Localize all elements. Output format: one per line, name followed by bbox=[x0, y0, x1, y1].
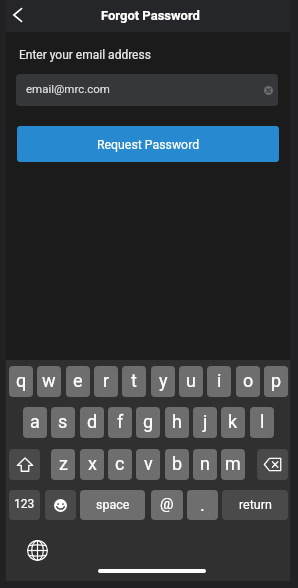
button[interactable]: u bbox=[179, 366, 203, 397]
button[interactable]: Emoji bbox=[45, 490, 76, 520]
staticText: p bbox=[271, 370, 282, 391]
button[interactable]: space bbox=[80, 490, 145, 520]
staticText: y bbox=[159, 370, 168, 391]
button[interactable]: Shift bbox=[9, 449, 40, 480]
button[interactable]: l bbox=[250, 407, 274, 438]
button[interactable]: y bbox=[151, 366, 175, 397]
staticText: Request Password bbox=[97, 138, 200, 152]
button[interactable]: v bbox=[136, 449, 160, 480]
button[interactable]: j bbox=[193, 407, 217, 438]
button[interactable]: a bbox=[23, 407, 47, 438]
staticText: i bbox=[217, 370, 222, 391]
button[interactable]: f bbox=[108, 407, 132, 438]
button[interactable]: k bbox=[221, 407, 245, 438]
staticText: s bbox=[58, 411, 68, 432]
staticText: r bbox=[103, 370, 110, 391]
button[interactable]: g bbox=[136, 407, 160, 438]
button[interactable]: r bbox=[94, 366, 118, 397]
staticText: space bbox=[96, 497, 130, 512]
button[interactable]: q bbox=[9, 366, 33, 397]
staticText: x bbox=[88, 453, 97, 474]
button[interactable]: w bbox=[37, 366, 61, 397]
staticText: @ bbox=[160, 495, 174, 513]
button[interactable]: c bbox=[108, 449, 132, 480]
button[interactable]: n bbox=[193, 449, 217, 480]
button[interactable]: d bbox=[80, 407, 104, 438]
staticText: . bbox=[200, 494, 205, 515]
staticText: h bbox=[172, 411, 182, 432]
staticText: q bbox=[16, 370, 27, 391]
staticText: email@mrc.com bbox=[26, 82, 110, 95]
staticText: e bbox=[73, 370, 83, 391]
button[interactable]: return bbox=[222, 490, 288, 520]
button[interactable]: . bbox=[187, 490, 218, 520]
button[interactable]: p bbox=[264, 366, 288, 397]
button[interactable]: Switch keyboard bbox=[27, 540, 48, 561]
button[interactable]: x bbox=[80, 449, 104, 480]
staticText: z bbox=[59, 453, 68, 474]
staticText: b bbox=[172, 453, 183, 474]
button[interactable]: z bbox=[51, 449, 75, 480]
button[interactable]: m bbox=[221, 449, 245, 480]
staticText: Enter your email address bbox=[19, 48, 151, 62]
staticText: d bbox=[87, 411, 98, 432]
staticText: o bbox=[243, 370, 254, 391]
button[interactable]: h bbox=[165, 407, 189, 438]
staticText: f bbox=[117, 411, 124, 432]
button[interactable]: Backspace bbox=[257, 449, 288, 480]
button[interactable]: i bbox=[207, 366, 231, 397]
staticText: a bbox=[30, 411, 40, 432]
button[interactable]: Back bbox=[6, 3, 30, 27]
staticText: g bbox=[143, 411, 154, 432]
button[interactable]: s bbox=[51, 407, 75, 438]
staticText: v bbox=[144, 453, 153, 474]
staticText: t bbox=[131, 370, 137, 391]
button[interactable]: Request Password bbox=[17, 126, 279, 162]
staticText: u bbox=[186, 370, 196, 391]
button[interactable]: t bbox=[122, 366, 146, 397]
staticText: Forgot Password bbox=[101, 8, 200, 23]
staticText: c bbox=[115, 453, 125, 474]
staticText: k bbox=[228, 411, 238, 432]
staticText: 123 bbox=[14, 497, 35, 511]
button[interactable]: b bbox=[165, 449, 189, 480]
staticText: w bbox=[42, 370, 56, 391]
button[interactable]: Clear text bbox=[264, 86, 273, 95]
staticText: l bbox=[260, 411, 265, 432]
button[interactable]: email@mrc.com bbox=[16, 74, 278, 106]
staticText: j bbox=[203, 411, 208, 432]
staticText: m bbox=[225, 453, 241, 474]
button[interactable]: o bbox=[236, 366, 260, 397]
button[interactable]: e bbox=[66, 366, 90, 397]
button[interactable]: @ bbox=[151, 490, 183, 520]
staticText: n bbox=[200, 453, 210, 474]
button[interactable]: 123 bbox=[9, 490, 40, 520]
staticText: return bbox=[239, 497, 272, 512]
